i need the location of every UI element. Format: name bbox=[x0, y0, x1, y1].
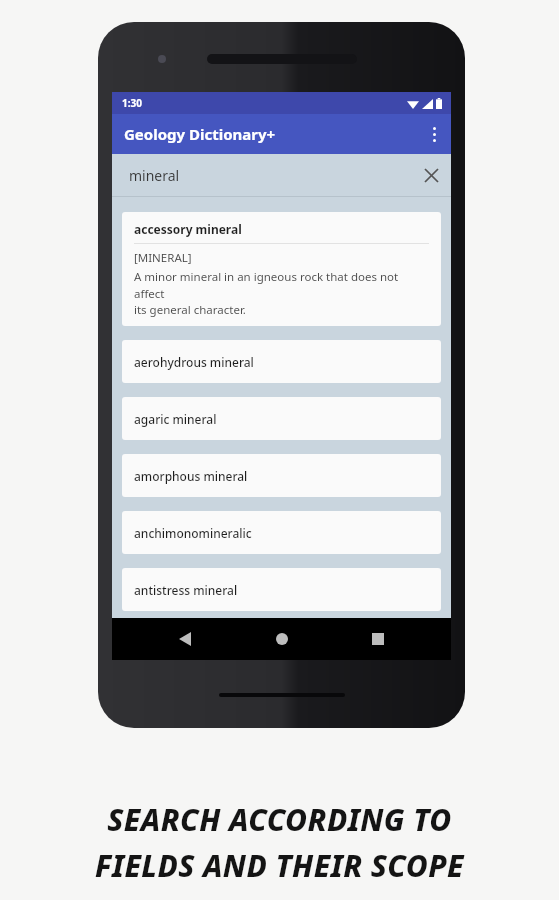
button[interactable]: Recent apps bbox=[355, 618, 401, 660]
button[interactable]: Back bbox=[162, 618, 208, 660]
staticText: agaric mineral bbox=[134, 411, 217, 427]
staticText: aerohydrous mineral bbox=[134, 354, 254, 370]
button[interactable]: aerohydrous mineral bbox=[122, 340, 441, 383]
button[interactable]: More options bbox=[417, 114, 451, 154]
button[interactable]: amorphous mineral bbox=[122, 454, 441, 497]
button[interactable]: agaric mineral bbox=[122, 397, 441, 440]
staticText: mineral bbox=[129, 166, 180, 185]
staticText: [MINERAL] bbox=[134, 250, 192, 266]
staticText: FIELDS AND THEIR SCOPE bbox=[95, 845, 464, 886]
staticText: 1:30 bbox=[122, 96, 142, 110]
staticText: A minor mineral in an igneous rock that … bbox=[134, 269, 429, 317]
button[interactable]: antistress mineral bbox=[122, 568, 441, 611]
staticText: accessory mineral bbox=[134, 221, 242, 237]
staticText: amorphous mineral bbox=[134, 468, 248, 484]
staticText: anchimonomineralic bbox=[134, 525, 252, 541]
button[interactable]: accessory mineral bbox=[122, 212, 441, 326]
staticText: antistress mineral bbox=[134, 582, 238, 598]
staticText: Geology Dictionary+ bbox=[124, 124, 276, 144]
staticText: SEARCH ACCORDING TO bbox=[107, 799, 452, 840]
button[interactable]: anchimonomineralic bbox=[122, 511, 441, 554]
button[interactable]: mineral bbox=[112, 154, 451, 196]
button[interactable]: Home bbox=[259, 618, 305, 660]
button[interactable]: Clear search bbox=[411, 155, 451, 195]
